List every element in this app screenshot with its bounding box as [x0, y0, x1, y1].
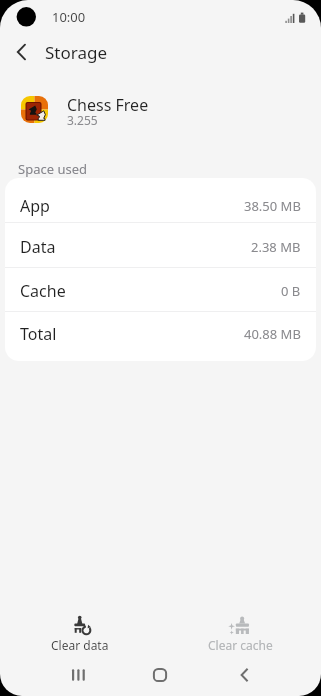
staticText: Chess Free — [67, 94, 149, 116]
staticText: Cache — [20, 280, 66, 302]
staticText: Clear cache — [208, 637, 273, 650]
staticText: App — [20, 195, 50, 217]
button[interactable]: Data — [5, 223, 316, 267]
staticText: 38.50 MB — [244, 197, 301, 215]
staticText: 40.88 MB — [244, 325, 301, 343]
staticText: Data — [20, 236, 56, 258]
staticText: 2.38 MB — [251, 238, 301, 256]
button[interactable] — [130, 650, 190, 696]
staticText: Total — [20, 323, 57, 345]
button[interactable]: Clear cache — [160, 602, 321, 650]
button[interactable]: Clear data — [0, 602, 160, 650]
staticText: Storage — [45, 41, 108, 64]
button[interactable] — [48, 650, 108, 696]
button[interactable]: App — [5, 178, 316, 222]
button[interactable] — [215, 650, 275, 696]
staticText: Space used — [18, 160, 87, 178]
staticText: 0 B — [281, 282, 301, 300]
staticText: 3.255 — [67, 112, 98, 128]
staticText: 10:00 — [52, 8, 86, 26]
staticText: Clear data — [51, 637, 109, 650]
button[interactable]: Total — [5, 312, 316, 361]
button[interactable] — [0, 34, 44, 70]
button[interactable]: Cache — [5, 268, 316, 311]
